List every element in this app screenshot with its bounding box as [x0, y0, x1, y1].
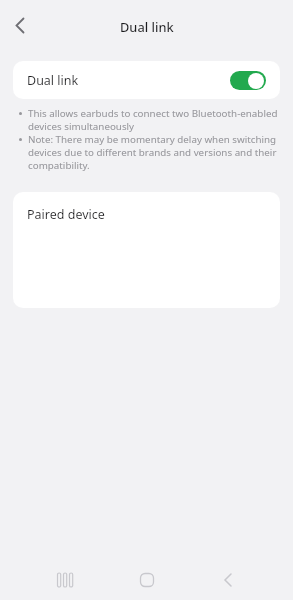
button[interactable]: Dual link	[13, 61, 280, 99]
button[interactable]: Paired device	[13, 192, 280, 308]
button[interactable]	[8, 13, 32, 37]
staticText: Note: There may be momentary delay when …	[28, 133, 277, 172]
staticText: Paired device	[27, 206, 105, 223]
button[interactable]	[208, 560, 248, 600]
staticText: Dual link	[120, 18, 174, 35]
staticText: This allows earbuds to connect two Bluet…	[28, 107, 277, 133]
button[interactable]	[127, 560, 167, 600]
button[interactable]	[46, 560, 86, 600]
button[interactable]	[230, 71, 266, 90]
staticText: Dual link	[27, 72, 79, 89]
